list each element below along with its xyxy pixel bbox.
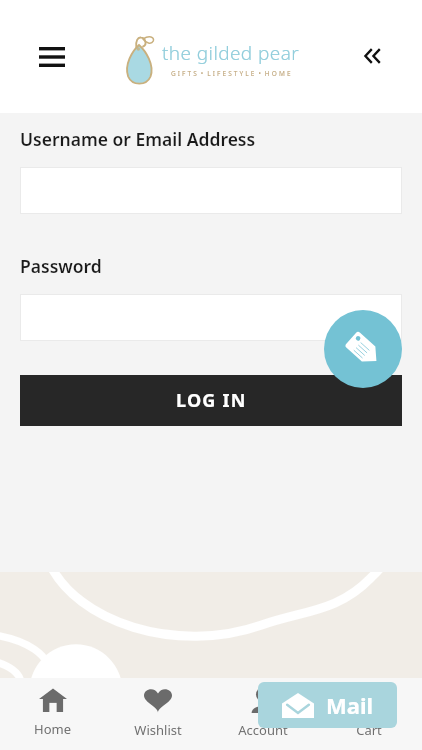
staticText: the gilded pear xyxy=(162,40,300,66)
button[interactable]: Home xyxy=(0,678,105,738)
staticText: Password xyxy=(20,254,102,278)
button[interactable]: Cart xyxy=(316,678,422,739)
staticText: Username or Email Address xyxy=(20,127,256,151)
staticText: Cart xyxy=(356,721,382,739)
button[interactable]: Menu xyxy=(30,35,74,79)
button[interactable]: Offers xyxy=(324,310,402,388)
staticText: Home xyxy=(34,720,71,738)
button[interactable] xyxy=(20,167,402,214)
button[interactable] xyxy=(20,294,402,341)
staticText: G I F T S • L I F E S T Y L E • H O M E xyxy=(171,69,291,78)
staticText: Wishlist xyxy=(134,721,182,739)
staticText: Account xyxy=(238,721,288,739)
staticText: Mail xyxy=(326,690,374,720)
button[interactable]: Mail xyxy=(258,682,397,728)
staticText: LOG IN xyxy=(176,388,247,413)
button[interactable]: Back xyxy=(354,35,396,77)
button[interactable]: the gilded pear xyxy=(122,34,300,84)
button[interactable]: Wishlist xyxy=(105,678,210,739)
button[interactable]: LOG IN xyxy=(20,375,402,426)
button[interactable]: Account xyxy=(210,678,316,739)
